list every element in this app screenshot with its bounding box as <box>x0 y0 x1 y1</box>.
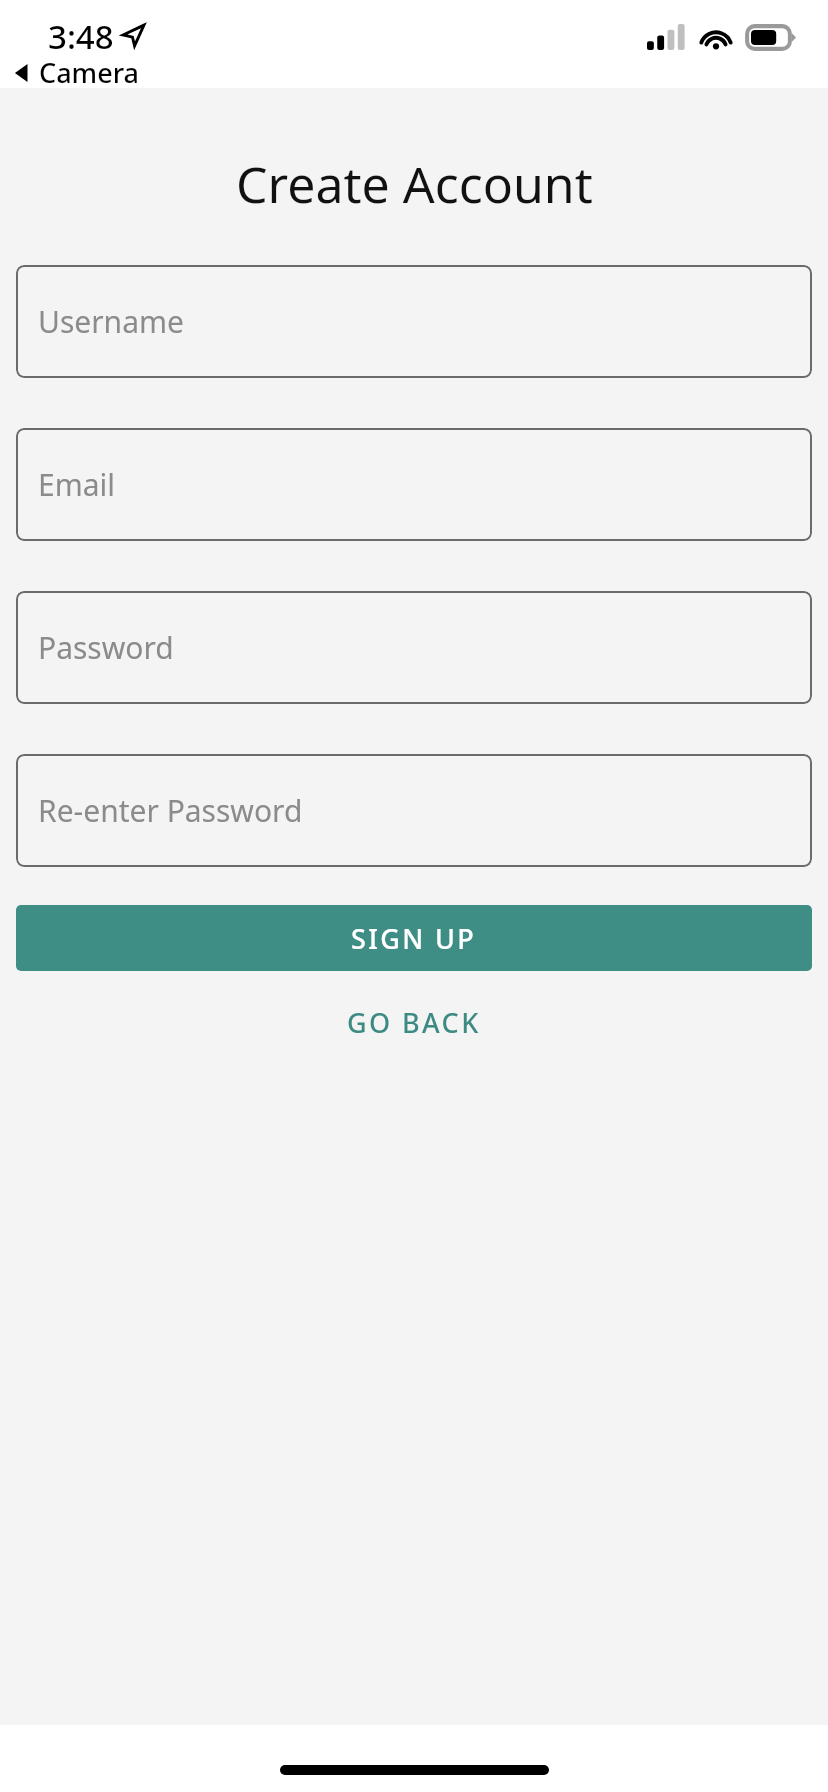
staticText: Email <box>38 464 116 505</box>
staticText: Username <box>38 301 184 342</box>
button[interactable]: Back to Camera <box>14 54 139 91</box>
staticText: GO BACK <box>347 1004 481 1041</box>
button[interactable]: Email <box>16 428 812 541</box>
button[interactable]: Password <box>16 591 812 704</box>
staticText: Camera <box>39 54 139 91</box>
button[interactable]: GO BACK <box>0 991 828 1053</box>
staticText: Create Account <box>236 150 593 218</box>
button[interactable]: Username <box>16 265 812 378</box>
button[interactable]: SIGN UP <box>16 905 812 971</box>
staticText: Re-enter Password <box>38 790 303 831</box>
staticText: SIGN UP <box>351 920 477 957</box>
staticText: Password <box>38 627 174 668</box>
staticText: 3:48 <box>48 14 114 59</box>
button[interactable]: Re-enter Password <box>16 754 812 867</box>
